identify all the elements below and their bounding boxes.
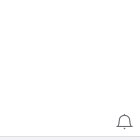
- button[interactable]: Notifications: [107, 112, 139, 136]
